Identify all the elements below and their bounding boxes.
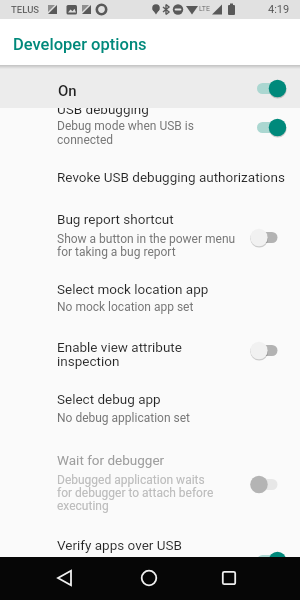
button[interactable] [250,228,287,247]
button[interactable] [250,551,287,570]
staticText: No debug application set [57,411,191,425]
staticText: Debug mode when USB is connected [57,119,194,147]
button[interactable]: Bug report shortcut [0,209,300,259]
staticText: Bug report shortcut [57,211,174,227]
button[interactable] [50,564,78,592]
staticText: Select debug app [57,391,161,407]
staticText: 4:19 [268,3,290,16]
staticText: TELUS [11,4,40,15]
staticText: Wait for debugger [57,452,165,468]
staticText: Show a button in the power menu for taki… [57,232,236,259]
button[interactable] [250,118,287,137]
staticText: Verify apps over USB [57,537,182,553]
button[interactable]: USB debugging [0,96,300,146]
staticText: Revoke USB debugging authorizations [57,169,285,185]
button[interactable] [250,341,287,360]
staticText: USB debugging [57,101,149,117]
button[interactable]: Select mock location app [0,279,300,319]
staticText: On [58,82,77,100]
button[interactable]: Revoke USB debugging authorizations [0,160,300,188]
staticText: No mock location app set [57,300,194,314]
button[interactable]: Verify apps over USB [0,535,300,559]
button[interactable]: Enable view attribute inspection [0,336,300,374]
button[interactable] [215,564,243,592]
button[interactable] [250,475,287,494]
button[interactable] [135,564,163,592]
staticText: Select mock location app [57,281,209,297]
staticText: LTE [199,5,210,13]
staticText: Developer options [13,35,147,54]
button[interactable]: On [0,65,300,108]
staticText: Enable view attribute inspection [57,339,182,370]
button[interactable]: Select debug app [0,388,300,428]
button[interactable]: Wait for debugger [0,443,300,507]
button[interactable] [250,79,287,98]
staticText: Debugged application waits for debugger … [57,473,214,513]
